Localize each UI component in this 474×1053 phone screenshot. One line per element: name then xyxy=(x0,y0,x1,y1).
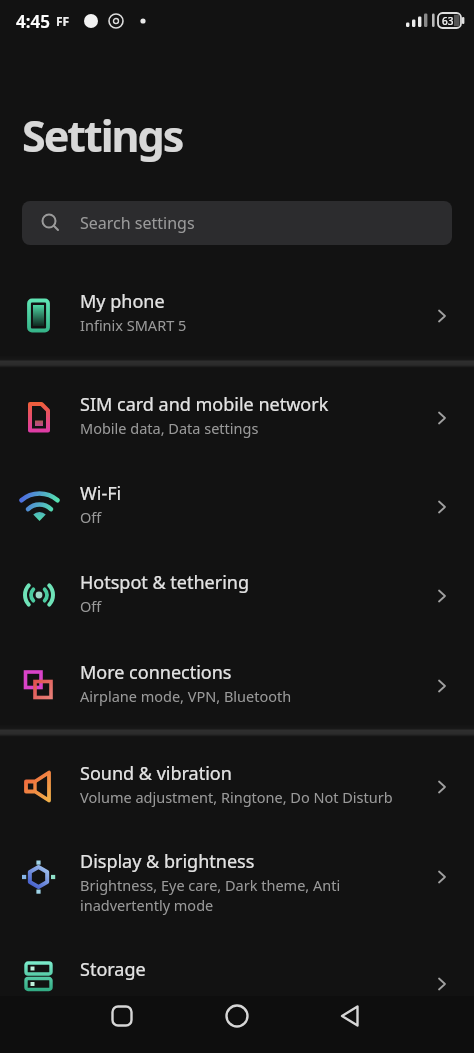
button[interactable]: Search settings xyxy=(22,201,452,245)
button[interactable]: Wi-Fi xyxy=(0,457,474,546)
staticText: Settings xyxy=(22,106,183,165)
staticText: Hotspot & tethering xyxy=(80,570,250,595)
staticText: Off xyxy=(80,596,102,616)
staticText: SIM card and mobile network xyxy=(80,392,329,417)
button[interactable]: Hotspot & tethering xyxy=(0,546,474,636)
staticText: Search settings xyxy=(80,212,195,234)
staticText: Storage xyxy=(80,957,146,982)
staticText: 63 xyxy=(442,14,454,28)
staticText: Mobile data, Data settings xyxy=(80,418,259,438)
button[interactable] xyxy=(214,996,260,1036)
staticText: Sound & vibration xyxy=(80,761,232,786)
button[interactable] xyxy=(328,996,374,1036)
button[interactable]: More connections xyxy=(0,636,474,725)
staticText: Off xyxy=(80,507,102,527)
button[interactable]: Storage xyxy=(0,933,474,1053)
staticText: Wi-Fi xyxy=(80,481,122,506)
staticText: Infinix SMART 5 xyxy=(80,315,187,335)
staticText: Volume adjustment, Ringtone, Do Not Dist… xyxy=(80,787,393,807)
staticText: Display & brightness xyxy=(80,849,255,874)
staticText: My phone xyxy=(80,289,165,314)
staticText: Brightness, Eye care, Dark theme, Anti i… xyxy=(80,875,341,915)
staticText: 4:45 xyxy=(16,10,50,33)
button[interactable]: Sound & vibration xyxy=(0,737,474,825)
staticText: FF xyxy=(56,13,70,29)
staticText: Airplane mode, VPN, Bluetooth xyxy=(80,686,292,706)
button[interactable]: Display & brightness xyxy=(0,825,474,933)
staticText: More connections xyxy=(80,660,232,685)
button[interactable]: My phone xyxy=(0,265,474,356)
button[interactable] xyxy=(99,996,145,1036)
button[interactable]: SIM card and mobile network xyxy=(0,368,474,457)
